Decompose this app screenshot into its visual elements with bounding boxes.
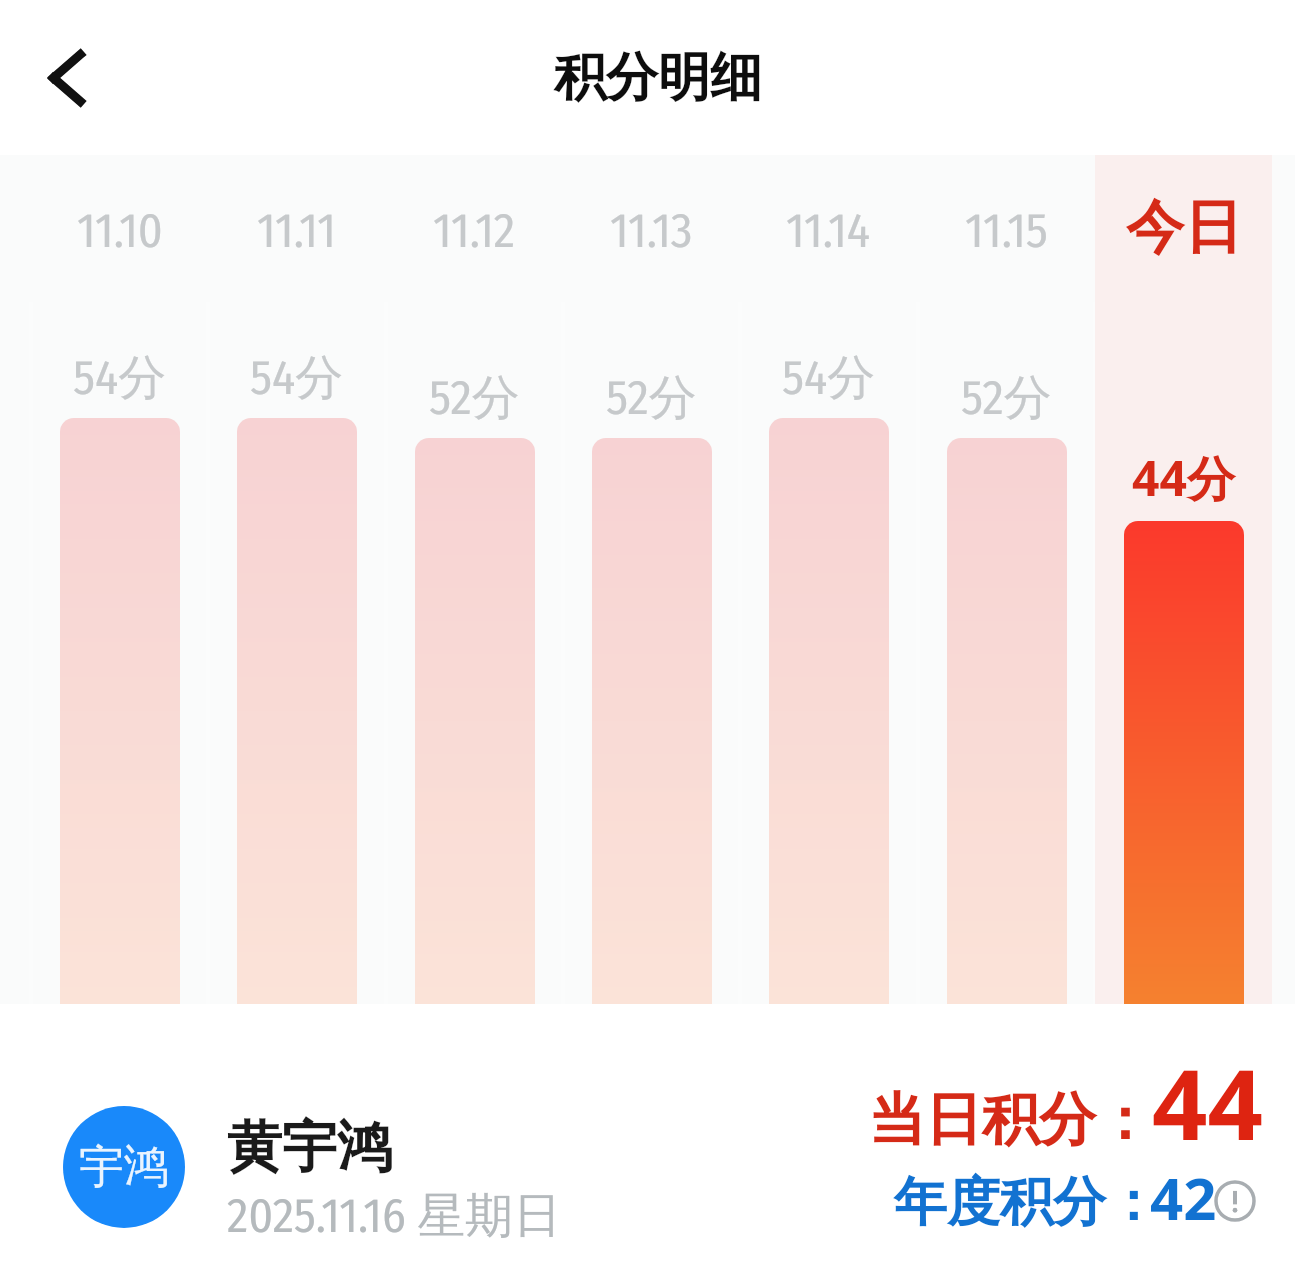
staticText: 11.13 [610,202,693,260]
staticText: 54分 [73,348,167,408]
staticText: 54分 [250,348,344,408]
staticText: 当日积分： [868,1084,1153,1156]
staticText: 11.10 [77,202,163,260]
button[interactable]: Back [28,38,108,118]
staticText: 52分 [606,368,697,428]
staticText: 42 [1150,1158,1217,1237]
button[interactable]: 11.11 [208,155,385,1004]
staticText: 52分 [429,368,520,428]
staticText: 今日 [1126,191,1242,264]
button[interactable]: 宇鸿 [63,1106,185,1228]
staticText: 44分 [1132,445,1235,511]
staticText: 54分 [782,348,876,408]
staticText: 44 [1152,1036,1263,1168]
button[interactable]: 11.15 [918,155,1095,1004]
staticText: 黄宇鸿 [227,1113,392,1182]
staticText: 宇鸿 [79,1139,169,1196]
button[interactable]: 11.10 [31,155,208,1004]
staticText: 11.15 [965,202,1048,260]
staticText: 2025.11.16 星期日 [227,1186,562,1246]
staticText: 52分 [961,368,1052,428]
button[interactable]: 11.14 [740,155,917,1004]
staticText: 11.14 [786,202,871,260]
staticText: 积分明细 [554,45,762,111]
staticText: 年度积分： [894,1169,1159,1236]
button[interactable]: 今日 [1095,155,1272,1004]
button[interactable]: 11.13 [563,155,740,1004]
button[interactable]: Info [1212,1178,1258,1224]
button[interactable]: 11.12 [386,155,563,1004]
staticText: 11.11 [257,202,336,260]
staticText: 11.12 [433,202,516,260]
